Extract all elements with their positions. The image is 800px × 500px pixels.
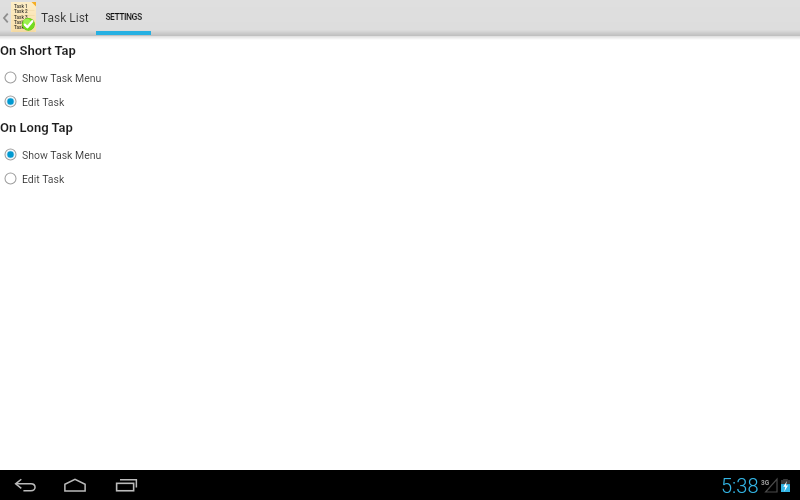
staticText: Show Task Menu	[22, 72, 102, 84]
staticText: Task 2	[14, 9, 28, 15]
button[interactable]: Edit Task	[0, 167, 800, 190]
button[interactable]: Show Task Menu	[0, 143, 800, 166]
staticText: On Long Tap	[0, 120, 73, 135]
staticText: On Short Tap	[0, 43, 76, 58]
staticText: Task 1	[14, 4, 28, 10]
button[interactable]: Edit Task	[0, 90, 800, 113]
staticText: Task List	[41, 11, 89, 25]
button[interactable]: Recent apps	[111, 470, 141, 500]
staticText: Edit Task	[22, 96, 65, 108]
staticText: SETTINGS	[105, 12, 142, 22]
staticText: Edit Task	[22, 173, 65, 185]
button[interactable]: Show Task Menu	[0, 66, 800, 89]
staticText: Task 4	[14, 20, 28, 26]
staticText: 5:38	[721, 474, 759, 497]
staticText: Task 3	[14, 15, 28, 21]
staticText: Task 5	[14, 25, 28, 31]
button[interactable]: Home	[60, 470, 90, 500]
button[interactable]: Back	[10, 470, 40, 500]
button[interactable]: Task 1	[0, 0, 90, 36]
staticText: Show Task Menu	[22, 149, 102, 161]
button[interactable]: SETTINGS	[96, 0, 151, 36]
staticText: 3G	[761, 479, 770, 487]
